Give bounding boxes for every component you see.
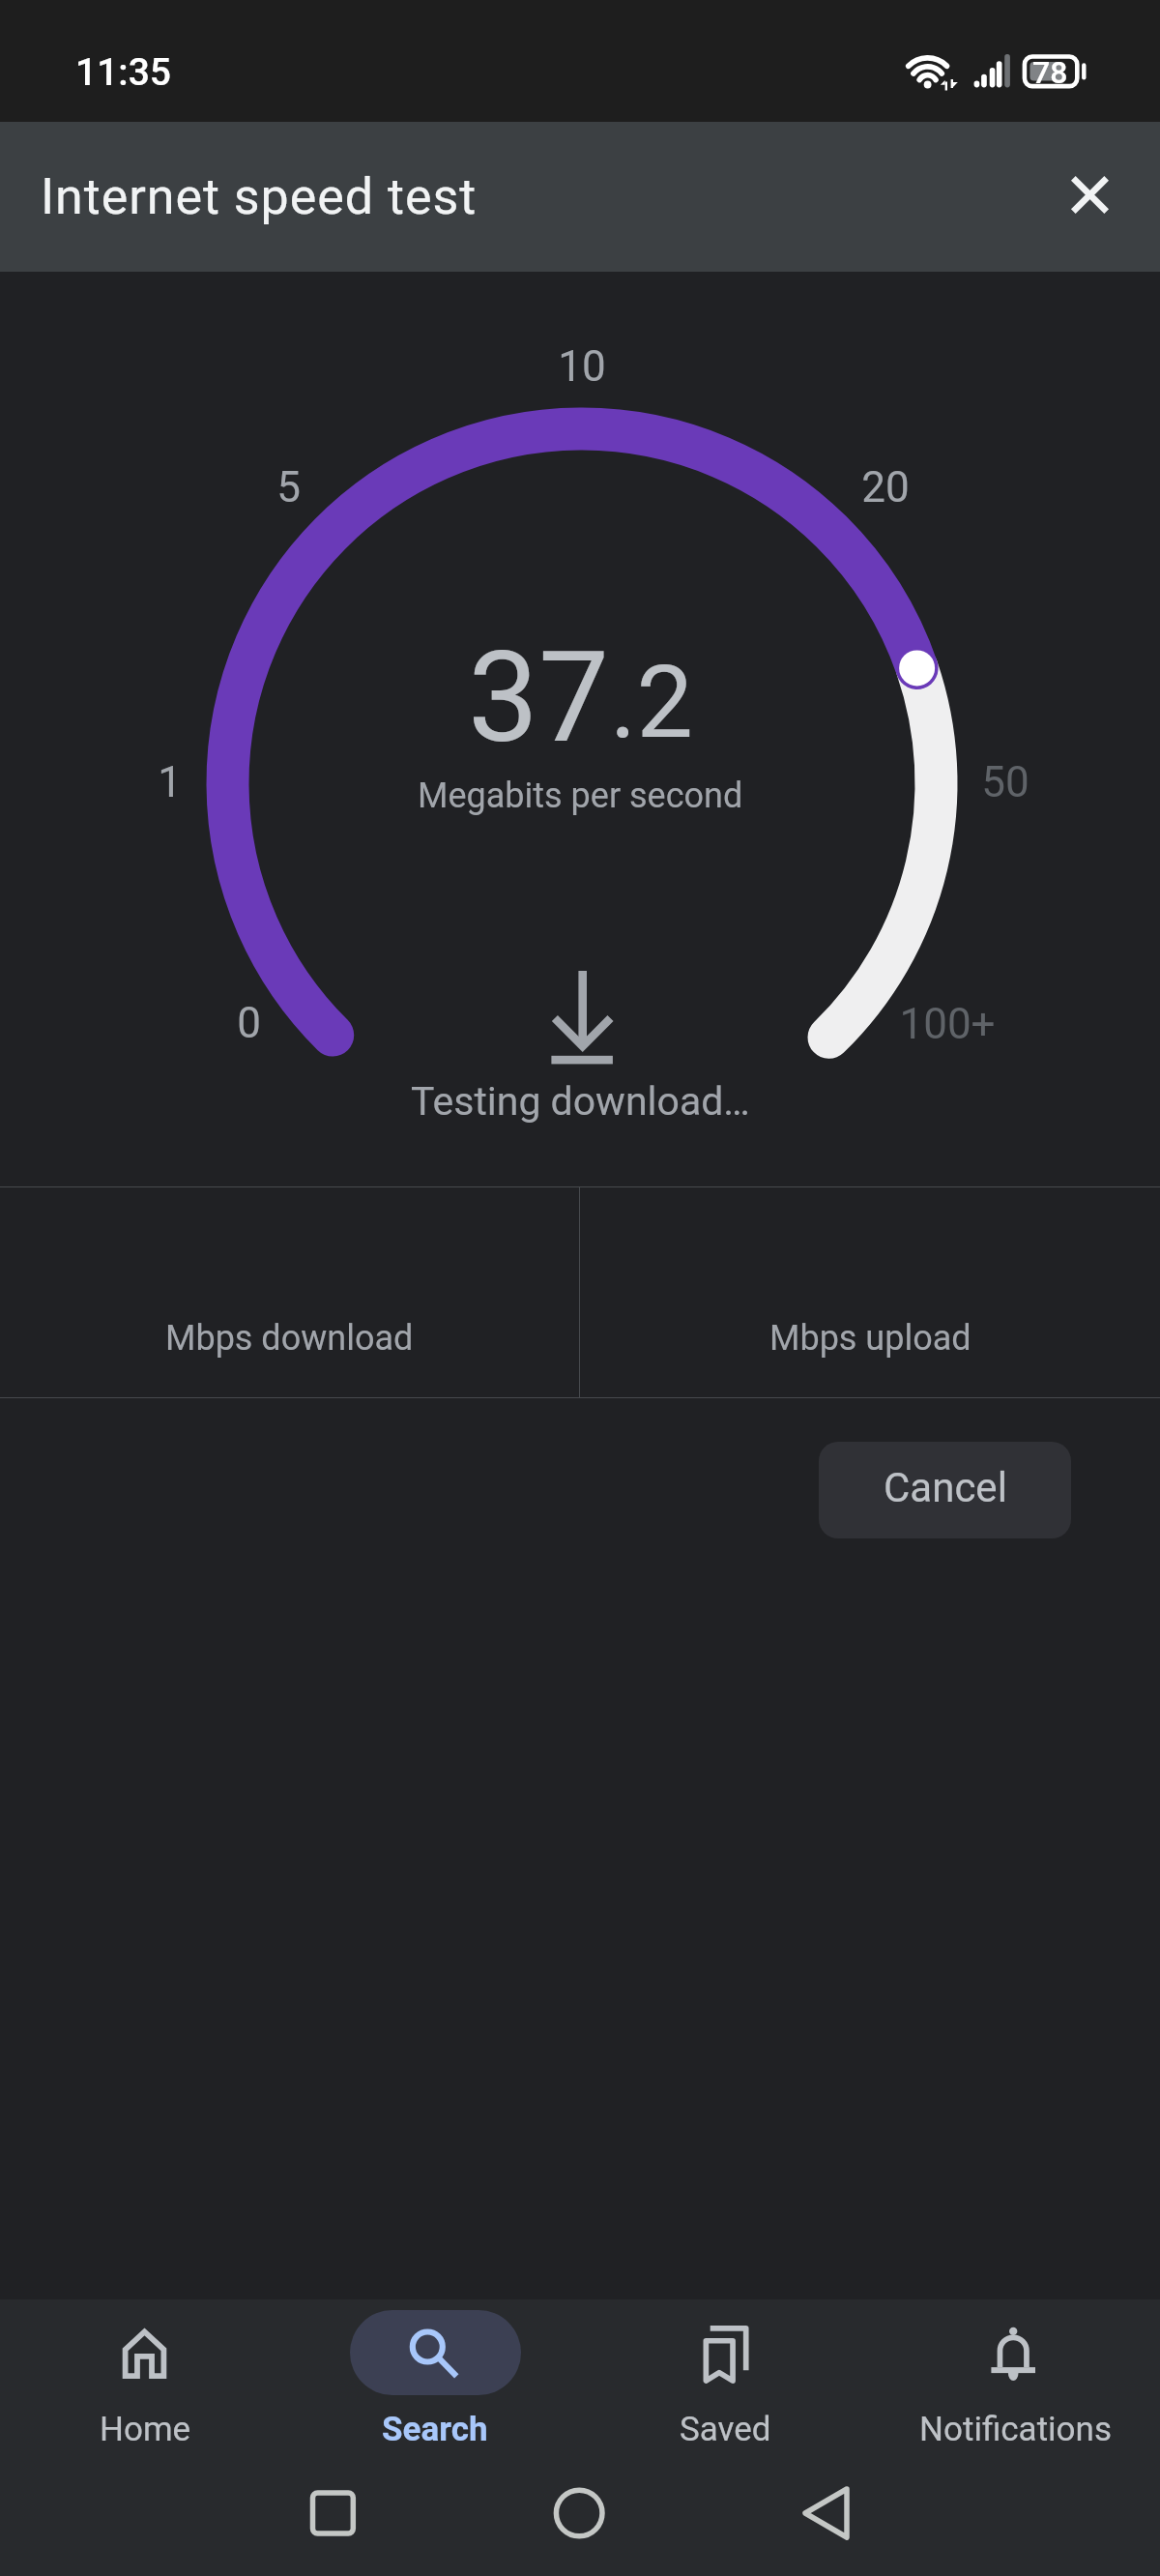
- staticText: 37: [468, 624, 610, 771]
- staticText: 100+: [899, 999, 996, 1049]
- staticText: 78: [1032, 54, 1068, 91]
- staticText: 11:35: [75, 50, 172, 95]
- button[interactable]: Close: [1039, 144, 1140, 245]
- staticText: Notifications: [919, 2410, 1112, 2449]
- button[interactable]: Search: [290, 2299, 580, 2454]
- button[interactable]: Mbps download: [0, 1187, 579, 1397]
- staticText: Cancel: [884, 1464, 1007, 1511]
- staticText: Testing download…: [411, 1078, 750, 1125]
- staticText: Mbps download: [165, 1318, 414, 1359]
- button[interactable]: Home: [0, 2299, 290, 2454]
- button[interactable]: Cancel: [819, 1442, 1071, 1538]
- button[interactable]: Saved: [580, 2299, 870, 2454]
- staticText: Megabits per second: [418, 776, 743, 816]
- staticText: Mbps upload: [769, 1318, 971, 1359]
- staticText: 50: [981, 757, 1029, 807]
- button[interactable]: Mbps upload: [580, 1187, 1160, 1397]
- staticText: 5: [276, 462, 301, 512]
- staticText: Internet speed test: [41, 167, 478, 226]
- staticText: 10: [558, 341, 606, 392]
- staticText: Saved: [680, 2410, 771, 2449]
- staticText: .2: [610, 644, 693, 762]
- staticText: Search: [382, 2410, 488, 2449]
- staticText: 20: [861, 462, 910, 512]
- staticText: 1: [158, 757, 182, 807]
- button[interactable]: Notifications: [870, 2299, 1160, 2454]
- staticText: 0: [237, 998, 261, 1048]
- staticText: Home: [100, 2410, 191, 2449]
